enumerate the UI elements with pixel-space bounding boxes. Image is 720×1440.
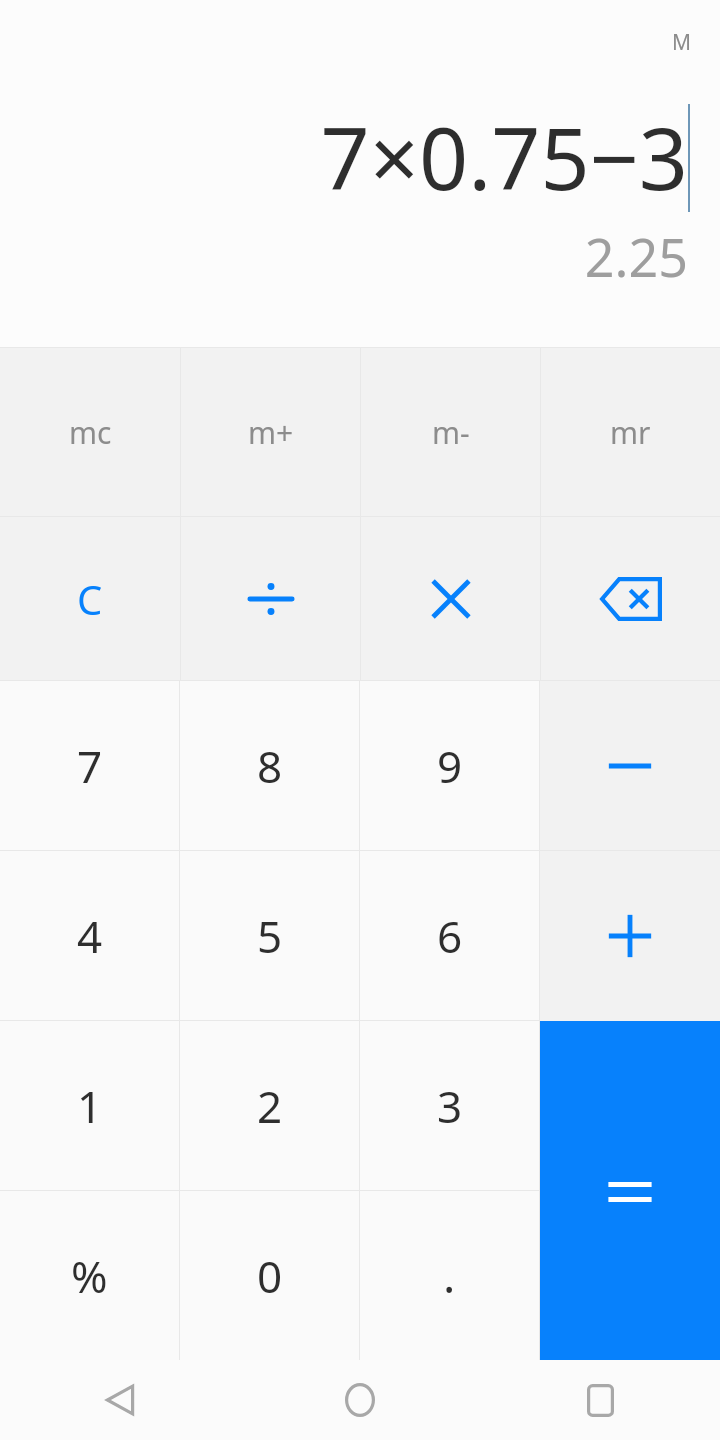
button[interactable]: Minus	[540, 681, 720, 850]
button[interactable]: 5	[180, 851, 359, 1020]
button[interactable]: .	[360, 1191, 539, 1360]
button[interactable]: Recents	[480, 1360, 720, 1440]
button[interactable]: Plus	[540, 851, 720, 1021]
button[interactable]: 0	[180, 1191, 359, 1360]
button[interactable]: 7	[0, 681, 179, 850]
staticText: M	[672, 28, 692, 57]
staticText: 8	[257, 736, 283, 796]
button[interactable]: Multiply	[361, 517, 540, 680]
staticText: 9	[437, 736, 463, 796]
staticText: 0	[257, 1246, 283, 1306]
staticText: 2.25	[584, 221, 688, 292]
staticText: 1	[77, 1076, 103, 1136]
staticText: m+	[248, 412, 294, 453]
button[interactable]: m-	[361, 348, 540, 516]
staticText: 3	[437, 1076, 463, 1136]
button[interactable]: %	[0, 1191, 179, 1360]
button[interactable]: Divide	[181, 517, 360, 680]
staticText: .	[443, 1244, 456, 1307]
button[interactable]: mc	[0, 348, 180, 516]
button[interactable]: Home	[240, 1360, 480, 1440]
staticText: m-	[432, 412, 470, 453]
button[interactable]: Back	[0, 1360, 240, 1440]
staticText: 4	[77, 906, 103, 966]
staticText: mr	[610, 412, 651, 453]
button[interactable]: Backspace	[541, 517, 720, 680]
button[interactable]: 1	[0, 1021, 179, 1190]
staticText: C	[77, 572, 103, 626]
staticText: 7×0.75−3	[320, 98, 688, 215]
button[interactable]: 6	[360, 851, 539, 1020]
button[interactable]: 4	[0, 851, 179, 1020]
button[interactable]: m+	[181, 348, 360, 516]
button[interactable]: 2	[180, 1021, 359, 1190]
staticText: 6	[437, 906, 463, 966]
staticText: 5	[257, 906, 283, 966]
staticText: 2	[257, 1076, 283, 1136]
staticText: %	[71, 1246, 108, 1306]
staticText: mc	[69, 412, 112, 453]
button[interactable]: 9	[360, 681, 539, 850]
button[interactable]: 3	[360, 1021, 539, 1190]
button[interactable]: Equals	[540, 1021, 720, 1360]
button[interactable]: mr	[541, 348, 720, 516]
staticText: 7	[77, 736, 103, 796]
button[interactable]: 8	[180, 681, 359, 850]
button[interactable]: C	[0, 517, 180, 680]
